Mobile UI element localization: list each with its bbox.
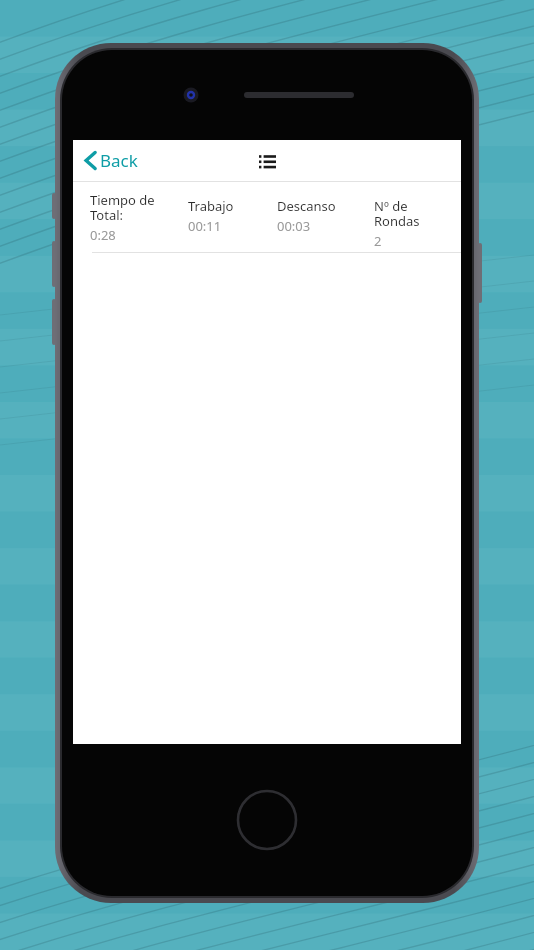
staticText: Tiempo de Total:	[90, 191, 155, 224]
button[interactable]: Nº de Rondas	[374, 191, 457, 250]
staticText: Back	[100, 149, 138, 172]
staticText: 2	[374, 232, 382, 250]
staticText: Trabajo	[188, 197, 234, 215]
staticText: Nº de Rondas	[374, 197, 420, 230]
button[interactable]: Back	[81, 145, 142, 176]
button[interactable]: Trabajo	[188, 191, 277, 235]
staticText: Descanso	[277, 197, 336, 215]
staticText: 00:03	[277, 217, 311, 235]
button[interactable]: Tiempo de Total:	[90, 191, 188, 244]
staticText: 00:11	[188, 217, 222, 235]
button[interactable]: Menu	[251, 146, 284, 176]
staticText: 0:28	[90, 226, 116, 244]
button[interactable]: Descanso	[277, 191, 374, 235]
